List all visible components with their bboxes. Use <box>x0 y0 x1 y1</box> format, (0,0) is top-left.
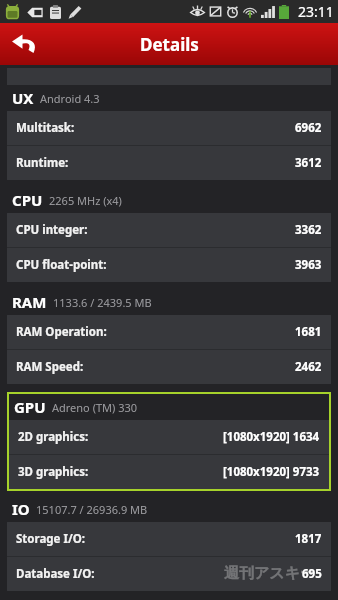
button[interactable]: 2D graphics: <box>9 420 329 454</box>
button[interactable]: RAM Operation: <box>7 315 331 349</box>
staticText: 2462 <box>295 359 322 375</box>
staticText: UX <box>12 88 34 108</box>
staticText: Android 4.3 <box>40 91 100 106</box>
staticText: 3D graphics: <box>18 464 89 480</box>
staticText: Database I/O: <box>16 566 95 582</box>
staticText: Runtime: <box>16 155 69 171</box>
staticText: 2265 MHz (x4) <box>49 193 122 208</box>
staticText: 1817 <box>295 531 322 547</box>
staticText: 2D graphics: <box>18 429 89 445</box>
staticText: CPU <box>12 190 43 210</box>
button[interactable]: Multitask: <box>7 111 331 145</box>
staticText: 23:11 <box>298 2 334 21</box>
staticText: 週刊アスキー <box>224 564 316 583</box>
staticText: 1681 <box>295 324 322 340</box>
button[interactable]: RAM Speed: <box>7 350 331 384</box>
staticText: 3963 <box>295 257 322 273</box>
staticText: 1133.6 / 2439.5 MB <box>53 295 152 310</box>
staticText: 3362 <box>295 222 322 238</box>
button[interactable]: Runtime: <box>7 146 331 180</box>
staticText: [1080x1920] 1634 <box>223 429 320 445</box>
staticText: Details <box>140 33 199 56</box>
button[interactable]: CPU integer: <box>7 213 331 247</box>
button[interactable]: 3D graphics: <box>9 455 329 489</box>
staticText: 6962 <box>295 120 322 136</box>
staticText: 15107.7 / 26936.9 MB <box>36 502 148 517</box>
button[interactable]: Back <box>0 23 48 65</box>
staticText: Multitask: <box>16 120 75 136</box>
staticText: CPU float-point: <box>16 257 107 273</box>
staticText: 695 <box>302 566 322 582</box>
staticText: [1080x1920] 9733 <box>223 464 320 480</box>
staticText: Storage I/O: <box>16 531 86 547</box>
staticText: RAM Speed: <box>16 359 84 375</box>
staticText: RAM Operation: <box>16 324 107 340</box>
staticText: CPU integer: <box>16 222 88 238</box>
staticText: IO <box>12 499 30 519</box>
staticText: 3612 <box>295 155 322 171</box>
button[interactable]: Storage I/O: <box>7 522 331 556</box>
button[interactable]: CPU float-point: <box>7 248 331 282</box>
button[interactable]: Database I/O: <box>7 557 331 591</box>
staticText: Adreno (TM) 330 <box>52 400 138 415</box>
staticText: GPU <box>14 397 46 417</box>
staticText: RAM <box>12 292 47 312</box>
